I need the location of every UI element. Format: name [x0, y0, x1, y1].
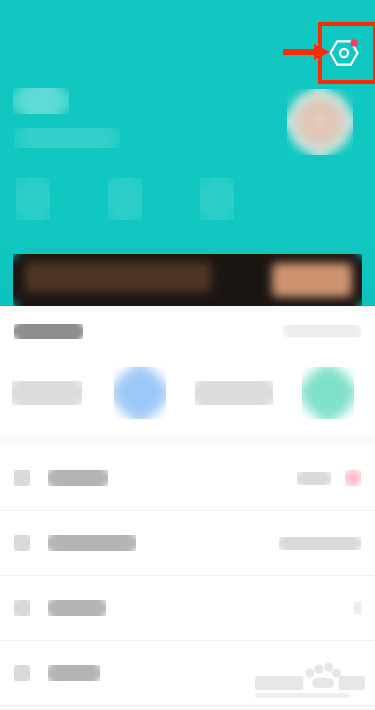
- button[interactable]: Quick action: [0, 350, 93, 436]
- button[interactable]: [0, 312, 375, 350]
- button[interactable]: Scan: [322, 31, 366, 75]
- button[interactable]: Quick action: [93, 350, 187, 436]
- button[interactable]: [13, 254, 362, 306]
- button[interactable]: [0, 446, 375, 510]
- button[interactable]: Quick action: [281, 350, 375, 436]
- button[interactable]: Quick action: [187, 350, 281, 436]
- button[interactable]: [0, 511, 375, 575]
- button[interactable]: [0, 576, 375, 640]
- button[interactable]: [0, 641, 375, 705]
- button[interactable]: Profile avatar: [287, 89, 353, 155]
